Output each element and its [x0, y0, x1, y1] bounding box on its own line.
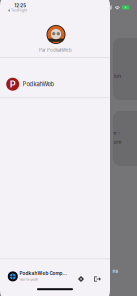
staticText: ns [112, 268, 118, 274]
staticText: 12:25 [14, 3, 26, 8]
staticText: e - [113, 130, 119, 136]
button[interactable]: PodkahWeb Comp… [2, 266, 72, 286]
staticText: Par PodkahWeb [39, 47, 72, 53]
button[interactable]: Réglages [74, 272, 87, 285]
button[interactable]: Retour à TestFlight [6, 7, 30, 13]
staticText: Voir le profil [19, 277, 38, 282]
staticText: PodkahWeb Comp… [19, 271, 66, 276]
staticText: PodkahWeb [23, 81, 55, 88]
staticText: TestFlight [11, 8, 27, 12]
staticText: ure [113, 139, 121, 145]
staticText: ion [114, 73, 121, 79]
staticText: P [10, 78, 16, 90]
button[interactable]: Se déconnecter [91, 272, 104, 285]
button[interactable]: P [0, 65, 110, 103]
